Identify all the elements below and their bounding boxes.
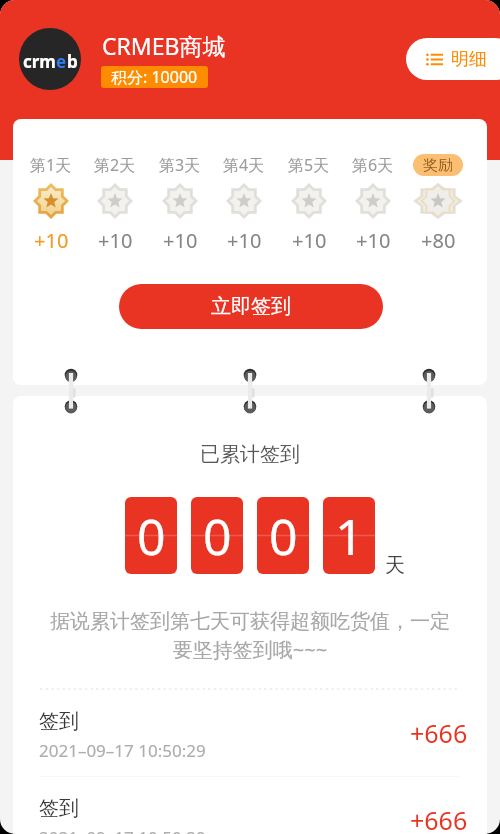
staticText: 第6天 [352, 154, 394, 176]
staticText: 2021–09–17 10:50:29 [39, 739, 206, 762]
staticText: 0 [269, 502, 298, 570]
button[interactable]: 明细 [406, 38, 500, 80]
staticText: 明细 [451, 48, 487, 71]
staticText: +666 [410, 716, 468, 750]
staticText: 立即签到 [211, 294, 291, 319]
staticText: crm [23, 50, 56, 73]
staticText: 奖励 [423, 156, 453, 175]
button[interactable]: 签到 [13, 777, 487, 834]
staticText: +10 [356, 227, 391, 254]
staticText: 据说累计签到第七天可获得超额吃货值，一定 要坚持签到哦~~~ [13, 609, 487, 663]
staticText: +10 [34, 227, 69, 254]
staticText: b [67, 50, 78, 73]
staticText: 已累计签到 [13, 442, 487, 467]
staticText: 第3天 [159, 154, 201, 176]
staticText: +10 [227, 227, 262, 254]
staticText: 第4天 [223, 154, 265, 176]
staticText: +10 [292, 227, 327, 254]
staticText: CRMEB商城 [102, 30, 226, 61]
staticText: 积分: 10000 [111, 66, 198, 88]
staticText: 第5天 [288, 154, 330, 176]
staticText: 2021–09–17 10:50:29 [39, 826, 206, 834]
button[interactable]: 签到 [13, 690, 487, 776]
staticText: 0 [203, 502, 232, 570]
staticText: +666 [410, 803, 468, 834]
staticText: 天 [385, 553, 405, 578]
staticText: e [56, 50, 67, 73]
staticText: +80 [421, 227, 456, 254]
button[interactable]: 立即签到 [119, 284, 383, 329]
staticText: 1 [335, 502, 364, 570]
staticText: 签到 [39, 796, 79, 821]
staticText: 第1天 [30, 154, 72, 176]
staticText: 0 [137, 502, 166, 570]
staticText: +10 [163, 227, 198, 254]
staticText: +10 [98, 227, 133, 254]
staticText: 第2天 [94, 154, 136, 176]
staticText: 签到 [39, 709, 79, 734]
